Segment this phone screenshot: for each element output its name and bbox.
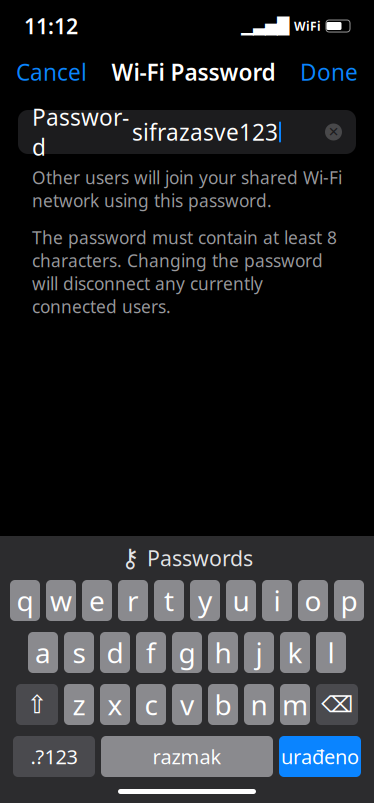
staticText: u xyxy=(232,582,249,619)
staticText: Other users will join your shared Wi-Fi … xyxy=(32,166,342,212)
staticText: Wi-Fi Password xyxy=(111,57,275,87)
button[interactable]: Done xyxy=(300,57,358,87)
staticText: v xyxy=(180,686,194,723)
button[interactable]: s xyxy=(64,632,94,673)
button[interactable]: z xyxy=(64,684,94,725)
staticText: The password must contain at least 8 cha… xyxy=(32,226,337,318)
button[interactable]: n xyxy=(244,684,274,725)
staticText: t xyxy=(164,582,174,619)
staticText: q xyxy=(16,582,33,619)
button[interactable]: Delete xyxy=(316,684,358,725)
staticText: x xyxy=(107,686,122,723)
button[interactable]: w xyxy=(46,580,76,621)
staticText: Cancel xyxy=(16,57,87,87)
staticText: s xyxy=(72,634,85,671)
button[interactable]: b xyxy=(208,684,238,725)
staticText: ⌫ xyxy=(321,692,353,717)
staticText: d xyxy=(106,634,123,671)
staticText: Password xyxy=(32,102,129,162)
button[interactable]: h xyxy=(208,632,238,673)
button[interactable]: y xyxy=(190,580,220,621)
staticText: 11:12 xyxy=(24,12,78,40)
staticText: o xyxy=(304,582,321,619)
button[interactable]: t xyxy=(154,580,184,621)
button[interactable]: p xyxy=(334,580,364,621)
staticText: z xyxy=(72,686,85,723)
staticText: c xyxy=(144,686,157,723)
staticText: WiFi xyxy=(294,18,321,34)
staticText: l xyxy=(327,634,334,671)
staticText: r xyxy=(127,582,139,619)
button[interactable]: m xyxy=(280,684,310,725)
staticText: m xyxy=(282,686,308,723)
staticText: j xyxy=(255,634,262,671)
staticText: i xyxy=(273,582,280,619)
button[interactable]: j xyxy=(244,632,274,673)
button[interactable]: razmak xyxy=(101,736,273,777)
staticText: n xyxy=(250,686,267,723)
staticText: g xyxy=(178,634,195,671)
button[interactable]: Cancel xyxy=(16,57,87,87)
button[interactable]: r xyxy=(118,580,148,621)
staticText: a xyxy=(35,634,51,671)
staticText: w xyxy=(50,582,72,619)
staticText: razmak xyxy=(152,743,221,770)
button[interactable]: Password xyxy=(18,110,356,154)
button[interactable]: a xyxy=(28,632,58,673)
button[interactable]: urađeno xyxy=(279,736,361,777)
staticText: b xyxy=(214,686,231,723)
staticText: y xyxy=(198,582,212,619)
staticText: e xyxy=(89,582,105,619)
button[interactable]: g xyxy=(172,632,202,673)
button[interactable]: .?123 xyxy=(13,736,95,777)
button[interactable]: Shift xyxy=(16,684,58,725)
button[interactable]: c xyxy=(136,684,166,725)
staticText: k xyxy=(287,634,302,671)
button[interactable]: ⚷ xyxy=(0,536,374,580)
button[interactable]: q xyxy=(10,580,40,621)
staticText: Done xyxy=(300,57,358,87)
staticText: sifrazasve123 xyxy=(132,117,278,147)
button[interactable]: i xyxy=(262,580,292,621)
button[interactable]: e xyxy=(82,580,112,621)
staticText: ▁▃▅█ xyxy=(241,17,289,35)
button[interactable]: f xyxy=(136,632,166,673)
button[interactable]: x xyxy=(100,684,130,725)
button[interactable]: k xyxy=(280,632,310,673)
button[interactable]: o xyxy=(298,580,328,621)
button[interactable]: d xyxy=(100,632,130,673)
button[interactable]: l xyxy=(316,632,346,673)
staticText: .?123 xyxy=(30,743,77,770)
staticText: ⇧ xyxy=(26,690,47,719)
button[interactable]: u xyxy=(226,580,256,621)
staticText: h xyxy=(214,634,231,671)
staticText: Passwords xyxy=(147,544,253,572)
button[interactable]: v xyxy=(172,684,202,725)
staticText: f xyxy=(146,634,156,671)
staticText: urađeno xyxy=(281,743,359,770)
staticText: ✕ xyxy=(328,124,339,139)
staticText: ⚷ xyxy=(121,544,140,572)
staticText: p xyxy=(340,582,357,619)
